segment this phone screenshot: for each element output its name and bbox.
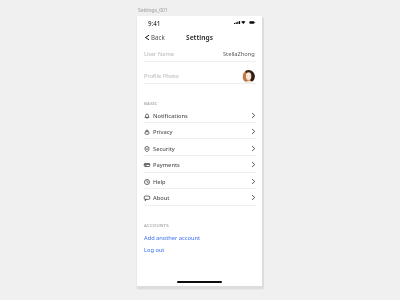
staticText: Payments [153,161,180,169]
staticText: Add another account [144,234,201,242]
staticText: Security [153,145,175,153]
button[interactable]: Add another account [137,232,262,244]
button[interactable]: Payments [137,157,262,172]
staticText: About [153,194,170,202]
button[interactable]: Help [137,174,262,189]
staticText: Settings_001 [138,7,168,14]
staticText: Notifications [153,112,188,120]
staticText: 9:41 [148,19,161,27]
button[interactable]: Log out [137,244,262,256]
button[interactable]: Notifications [137,108,262,123]
button[interactable]: Security [137,141,262,156]
button[interactable]: Privacy [137,124,262,139]
staticText: Back [151,33,165,41]
other: Profile photo [242,70,255,83]
staticText: Profile Photo [144,72,179,80]
staticText: Help [153,178,166,186]
staticText: BASIC [144,100,158,106]
staticText: Settings [186,33,214,42]
staticText: User Name [144,50,174,58]
staticText: Privacy [153,128,173,136]
button[interactable]: About [137,190,262,205]
button[interactable]: Back [143,31,167,43]
staticText: StellaZhong [223,50,255,58]
button[interactable]: User Name [137,46,262,61]
staticText: ACCOUNTS [144,222,169,228]
staticText: Log out [144,246,165,254]
button[interactable]: Profile Photo [137,67,262,85]
